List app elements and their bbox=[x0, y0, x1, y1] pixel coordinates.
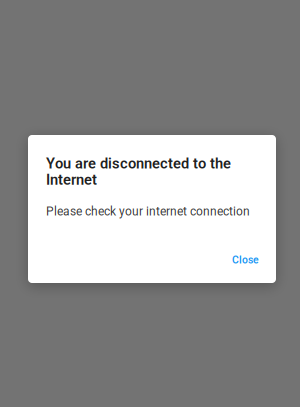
staticText: You are disconnected to the Internet bbox=[46, 155, 231, 188]
staticText: Please check your internet connection bbox=[46, 204, 250, 218]
staticText: Close bbox=[232, 254, 259, 266]
button[interactable]: Close bbox=[232, 254, 259, 266]
